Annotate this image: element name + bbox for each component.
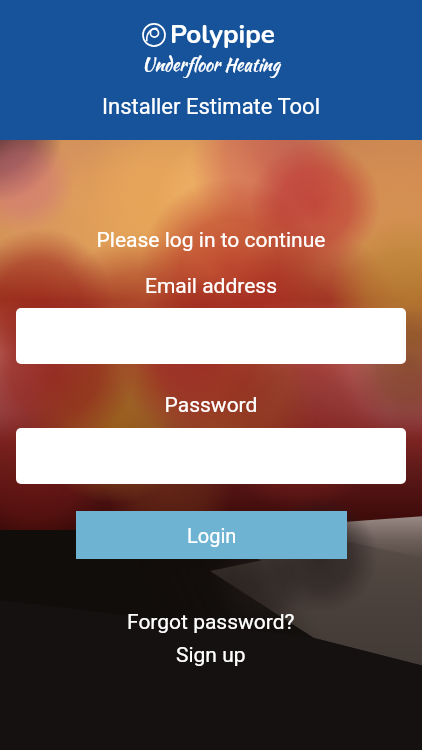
button[interactable] [16,428,406,484]
staticText: Sign up [176,643,246,668]
button[interactable] [16,308,406,364]
staticText: Underfloor Heating [0,51,422,77]
staticText: Email address [0,274,422,299]
staticText: Forgot password? [127,610,295,635]
staticText: Login [187,524,237,547]
staticText: Please log in to continue [0,228,422,253]
button[interactable]: Login [76,511,347,559]
staticText: Installer Estimate Tool [0,94,422,120]
staticText: Password [0,393,422,418]
button[interactable]: Sign up [176,643,246,668]
staticText: Polypipe [170,17,275,52]
button[interactable]: Forgot password? [127,610,295,635]
